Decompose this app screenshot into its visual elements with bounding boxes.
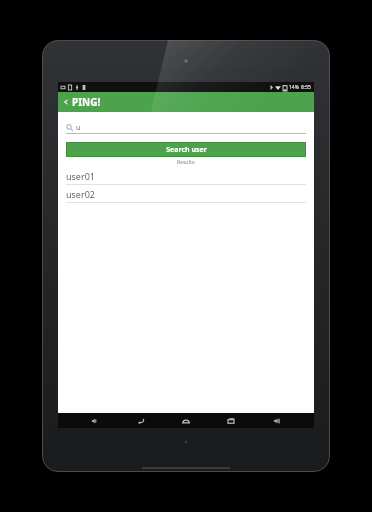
button[interactable]: Search user: [66, 142, 306, 157]
staticText: PING!: [72, 95, 101, 109]
staticText: 8:55: [301, 84, 311, 91]
staticText: Results:: [177, 159, 196, 166]
button[interactable]: u: [66, 122, 306, 134]
button[interactable]: user01: [58, 167, 314, 185]
button[interactable]: Navigate up: [60, 96, 72, 108]
staticText: user02: [66, 188, 95, 200]
button[interactable]: Recent apps: [223, 413, 239, 428]
staticText: 14%: [289, 84, 299, 91]
button[interactable]: user02: [58, 185, 314, 203]
staticText: Search user: [166, 145, 207, 155]
button[interactable]: Home: [178, 413, 194, 428]
button[interactable]: Volume down: [87, 413, 103, 428]
staticText: user01: [66, 170, 95, 182]
staticText: u: [76, 123, 81, 133]
button[interactable]: Back: [133, 413, 149, 428]
button[interactable]: Volume up: [269, 413, 285, 428]
